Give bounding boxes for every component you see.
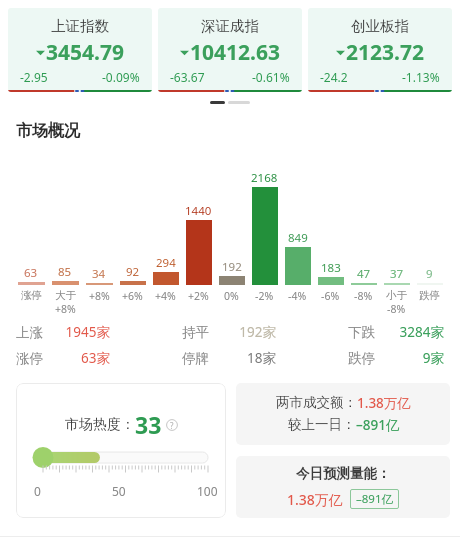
- staticText: –891亿: [356, 491, 393, 507]
- button[interactable]: 上证指数: [8, 8, 152, 92]
- staticText: +4%: [155, 289, 176, 303]
- staticText: 市场概况: [16, 121, 80, 141]
- staticText: 跌停: [419, 289, 440, 302]
- staticText: 0: [34, 483, 41, 499]
- staticText: 1945家: [50, 323, 110, 341]
- staticText: 34: [92, 266, 106, 282]
- staticText: 1.38万亿: [287, 490, 343, 509]
- button[interactable]: 深证成指: [158, 8, 302, 92]
- staticText: 63: [24, 265, 38, 281]
- staticText: +8%: [89, 289, 110, 303]
- staticText: 2123.72: [346, 38, 424, 67]
- staticText: 上证指数: [51, 17, 109, 35]
- staticText: -63.67: [170, 69, 205, 85]
- button[interactable]: 今日预测量能：: [236, 456, 450, 518]
- staticText: 持平: [182, 324, 216, 341]
- staticText: -2.95: [20, 69, 48, 85]
- staticText: ?: [170, 420, 174, 431]
- button[interactable]: 市场热度：: [16, 383, 226, 518]
- staticText: -24.2: [320, 69, 348, 85]
- staticText: -6%: [321, 289, 340, 303]
- staticText: +6%: [122, 289, 143, 303]
- staticText: 192: [222, 259, 242, 275]
- staticText: 停牌: [182, 350, 216, 367]
- staticText: 33: [135, 409, 162, 440]
- staticText: 50: [112, 483, 126, 499]
- staticText: 18家: [216, 349, 276, 367]
- staticText: 2168: [251, 170, 278, 186]
- staticText: 较上一日：: [288, 416, 356, 433]
- staticText: -0.61%: [252, 69, 290, 85]
- staticText: 63家: [50, 349, 110, 367]
- staticText: 下跌: [348, 324, 382, 341]
- staticText: 创业板指: [351, 17, 409, 35]
- staticText: 1.38万亿: [357, 394, 411, 412]
- staticText: 10412.63: [190, 38, 280, 67]
- staticText: 849: [288, 230, 308, 246]
- staticText: +2%: [188, 289, 209, 303]
- staticText: 市场热度：: [65, 416, 135, 434]
- staticText: 深证成指: [201, 17, 259, 35]
- staticText: 小于: [386, 289, 407, 302]
- staticText: 大于: [55, 289, 76, 302]
- staticText: -8%: [387, 302, 406, 316]
- staticText: 183: [321, 260, 341, 276]
- staticText: 294: [156, 255, 176, 271]
- staticText: -1.13%: [402, 69, 440, 85]
- staticText: 3454.79: [46, 38, 124, 67]
- button[interactable]: 两市成交额：: [236, 383, 450, 445]
- button[interactable]: 说明: [166, 419, 178, 431]
- staticText: 192家: [216, 323, 276, 341]
- staticText: 今日预测量能：: [296, 465, 391, 482]
- staticText: -4%: [288, 289, 307, 303]
- staticText: 100: [197, 483, 218, 499]
- staticText: 涨停: [21, 289, 42, 302]
- staticText: 37: [390, 266, 404, 282]
- staticText: 9家: [382, 349, 444, 367]
- staticText: -0.09%: [102, 69, 140, 85]
- staticText: 上涨: [16, 324, 50, 341]
- button[interactable]: 创业板指: [308, 8, 452, 92]
- staticText: 85: [58, 264, 72, 280]
- staticText: -2%: [255, 289, 274, 303]
- staticText: 涨停: [16, 350, 50, 367]
- staticText: 两市成交额：: [276, 394, 357, 411]
- staticText: –891亿: [356, 416, 400, 434]
- staticText: 92: [126, 264, 140, 280]
- staticText: 3284家: [382, 323, 444, 341]
- staticText: 9: [426, 266, 433, 282]
- staticText: 跌停: [348, 350, 382, 367]
- staticText: 0%: [224, 289, 239, 303]
- staticText: +8%: [55, 302, 76, 316]
- staticText: 47: [357, 266, 371, 282]
- staticText: 1440: [185, 203, 212, 219]
- staticText: -8%: [354, 289, 373, 303]
